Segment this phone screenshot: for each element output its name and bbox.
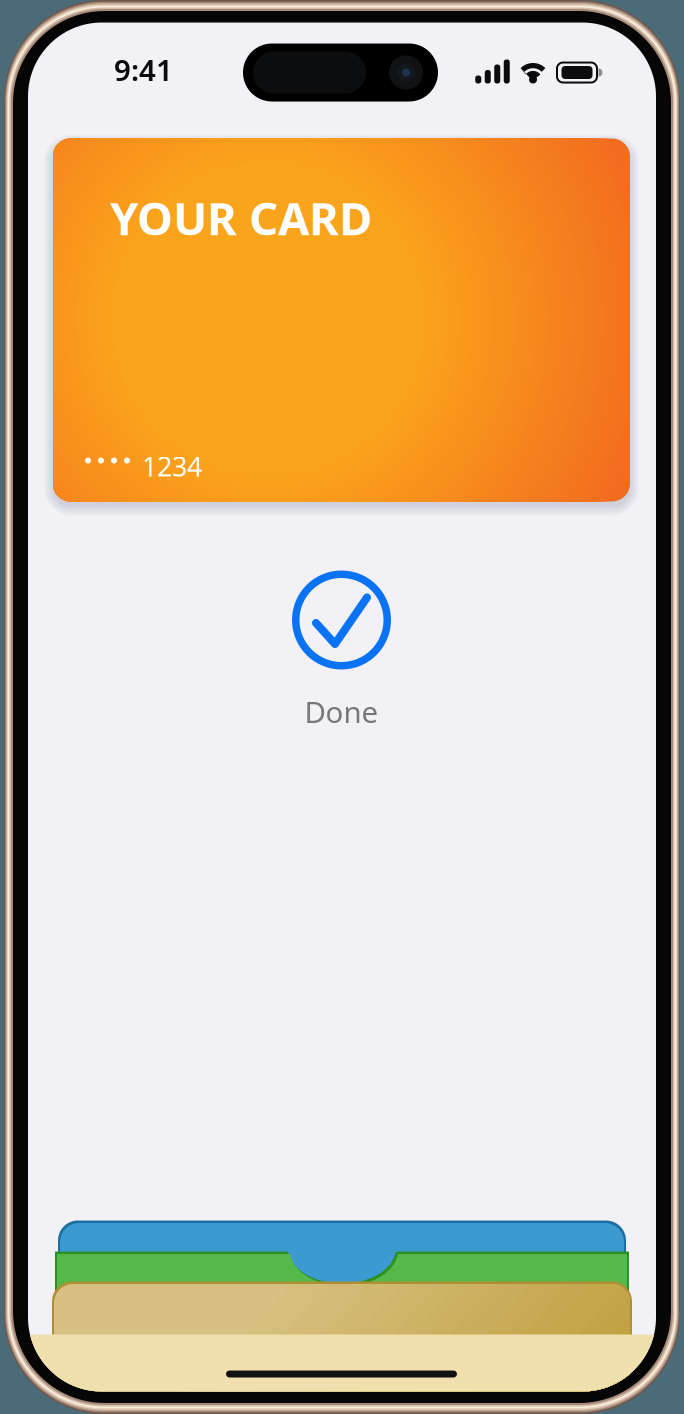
button[interactable] [58,1220,626,1390]
button[interactable] [52,1281,632,1414]
staticText: YOUR CARD [110,187,372,248]
staticText: 1234 [142,448,202,484]
staticText: 9:41 [114,50,173,89]
staticText: Done [304,692,378,731]
button[interactable]: YOUR CARD [53,138,630,501]
button[interactable] [55,1251,629,1414]
